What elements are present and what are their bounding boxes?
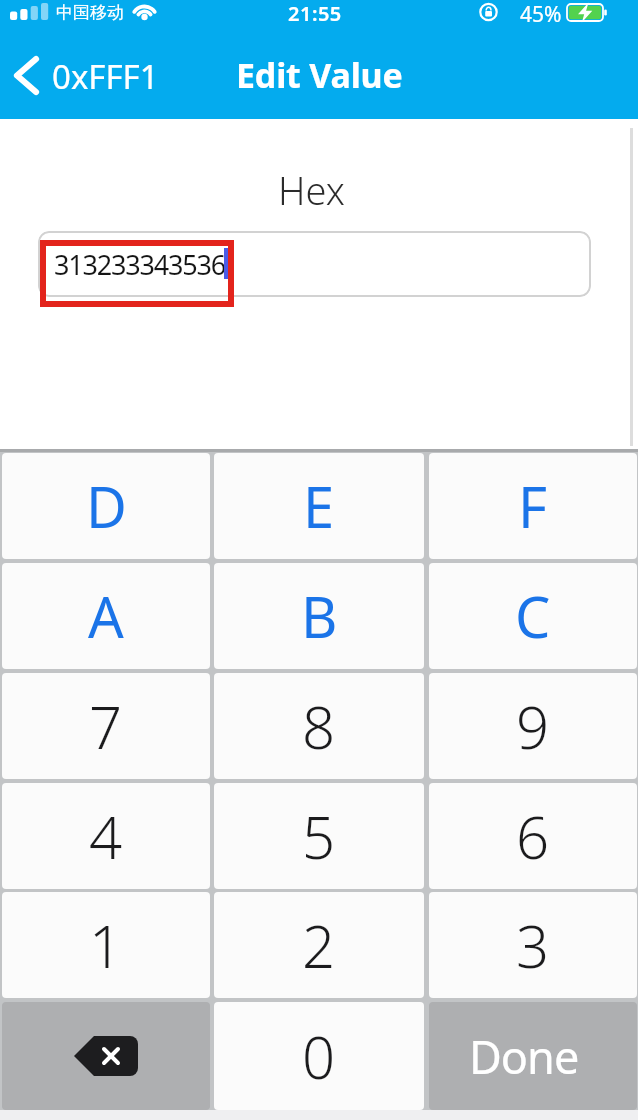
- button[interactable]: 4: [2, 783, 210, 889]
- button[interactable]: 8: [214, 673, 424, 779]
- staticText: Done: [469, 1026, 579, 1087]
- staticText: 5: [302, 797, 336, 876]
- staticText: 9: [516, 687, 550, 766]
- staticText: 7: [89, 687, 123, 766]
- button[interactable]: 1: [2, 892, 210, 998]
- staticText: 21:55: [288, 0, 342, 24]
- button[interactable]: B: [214, 563, 424, 669]
- staticText: Hex: [278, 164, 345, 214]
- button[interactable]: 5: [214, 783, 424, 889]
- staticText: 313233343536: [54, 246, 225, 283]
- staticText: 2: [302, 906, 336, 985]
- staticText: 1: [89, 906, 123, 985]
- button[interactable]: [2, 1002, 210, 1110]
- button[interactable]: 3: [429, 892, 637, 998]
- button[interactable]: A: [2, 563, 210, 669]
- staticText: 0: [302, 1017, 336, 1096]
- button[interactable]: F: [429, 453, 637, 559]
- button[interactable]: Done: [429, 1002, 637, 1110]
- button[interactable]: 2: [214, 892, 424, 998]
- staticText: 3: [516, 906, 550, 985]
- button[interactable]: [38, 231, 591, 297]
- staticText: 0xFFF1: [52, 54, 159, 99]
- button[interactable]: E: [214, 453, 424, 559]
- button[interactable]: D: [2, 453, 210, 559]
- staticText: 45%: [520, 0, 562, 24]
- staticText: 8: [302, 687, 336, 766]
- staticText: F: [518, 468, 548, 544]
- button[interactable]: C: [429, 563, 637, 669]
- staticText: 6: [516, 797, 550, 876]
- button[interactable]: 0xFFF1: [6, 50, 186, 102]
- button[interactable]: 9: [429, 673, 637, 779]
- staticText: 4: [89, 797, 123, 876]
- button[interactable]: 7: [2, 673, 210, 779]
- button[interactable]: 6: [429, 783, 637, 889]
- staticText: B: [301, 578, 338, 654]
- button[interactable]: 0: [214, 1002, 424, 1110]
- staticText: Edit Value: [236, 52, 403, 98]
- staticText: 中国移动: [56, 2, 124, 23]
- staticText: D: [86, 468, 127, 544]
- staticText: C: [515, 578, 551, 654]
- staticText: A: [88, 578, 124, 654]
- staticText: E: [303, 468, 335, 544]
